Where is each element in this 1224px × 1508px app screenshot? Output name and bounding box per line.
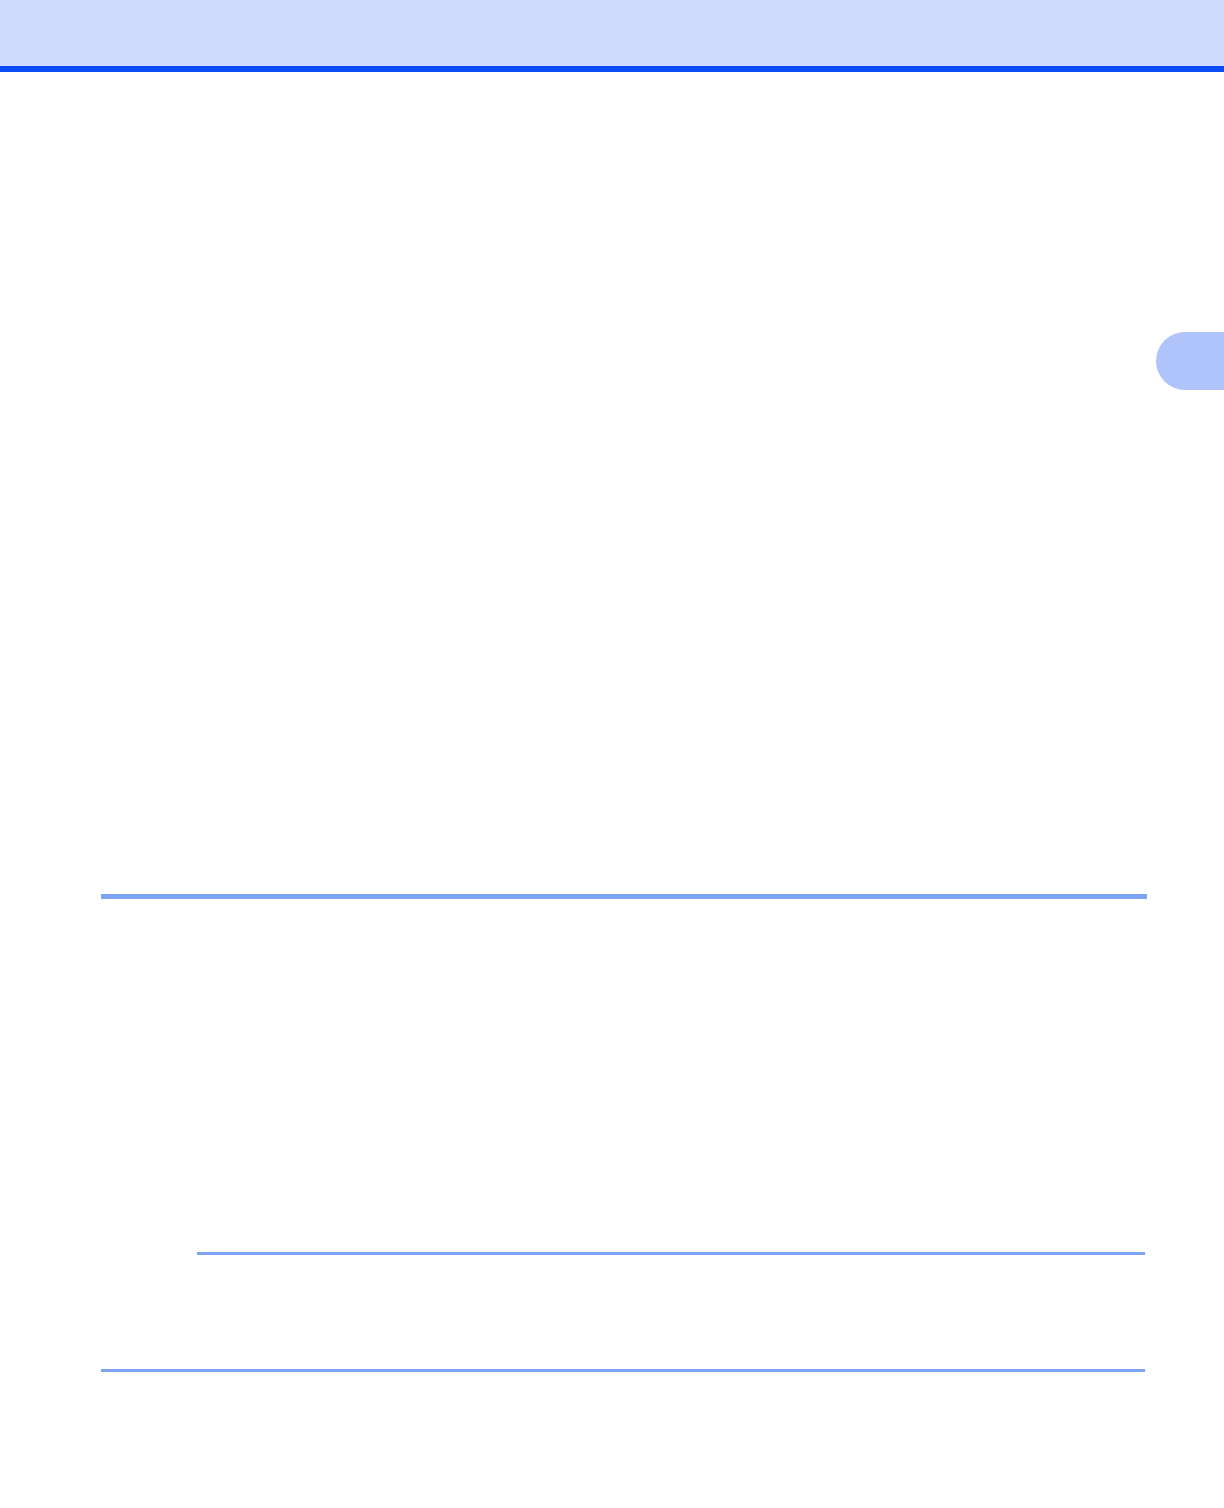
button[interactable]: Page header	[0, 0, 1224, 72]
button[interactable]: Chapter tab	[1156, 332, 1224, 390]
